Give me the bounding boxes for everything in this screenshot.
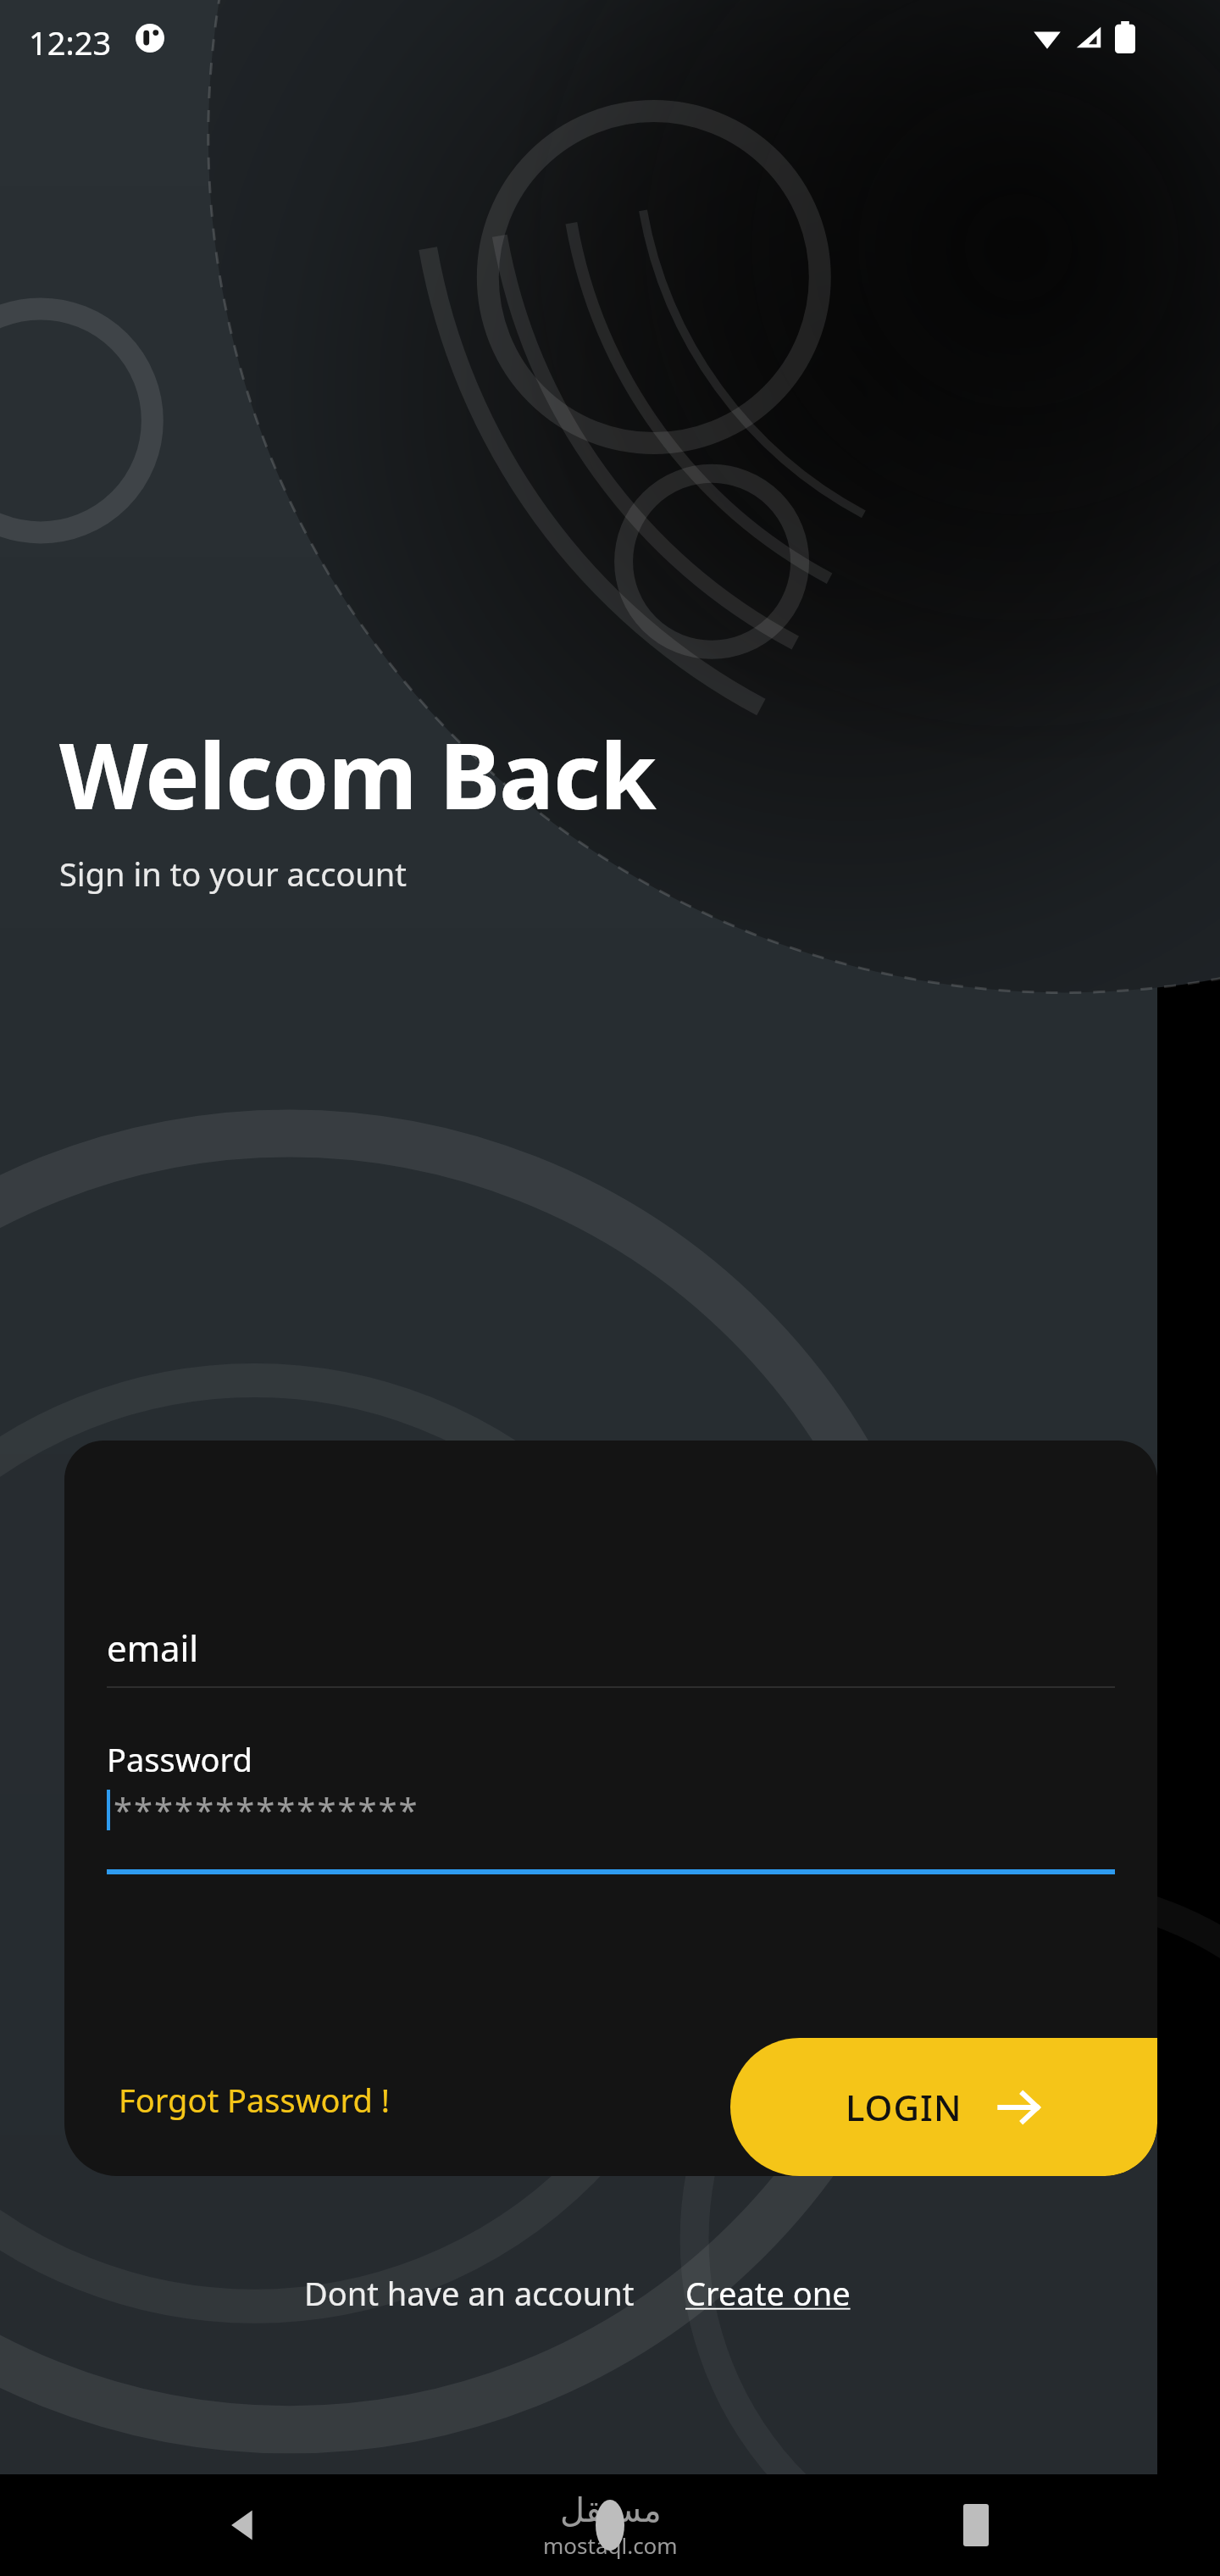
staticText: Forgot Password ! xyxy=(119,2078,390,2122)
staticText: Create one xyxy=(685,2271,851,2315)
button[interactable]: Home xyxy=(569,2484,651,2566)
button[interactable]: Forgot Password ! xyxy=(119,2078,390,2122)
button[interactable]: Recent apps xyxy=(935,2484,1017,2566)
staticText: email xyxy=(107,1624,199,1672)
button[interactable]: Create one xyxy=(682,2266,854,2320)
button[interactable]: Back xyxy=(203,2484,285,2566)
staticText: 12:23 xyxy=(29,20,112,64)
staticText: Dont have an account xyxy=(304,2271,635,2315)
button[interactable]: email xyxy=(64,1593,1157,1712)
staticText: Welcom Back xyxy=(59,712,656,836)
button[interactable]: Password xyxy=(64,1729,1157,1898)
staticText: LOGIN xyxy=(846,2083,962,2131)
staticText: *************** xyxy=(114,1786,419,1832)
staticText: mostaql.com xyxy=(543,2530,678,2560)
button[interactable]: LOGIN xyxy=(730,2038,1157,2176)
staticText: Password xyxy=(107,1737,252,1781)
staticText: مستقل xyxy=(560,2490,662,2530)
staticText: Sign in to your account xyxy=(59,852,408,896)
